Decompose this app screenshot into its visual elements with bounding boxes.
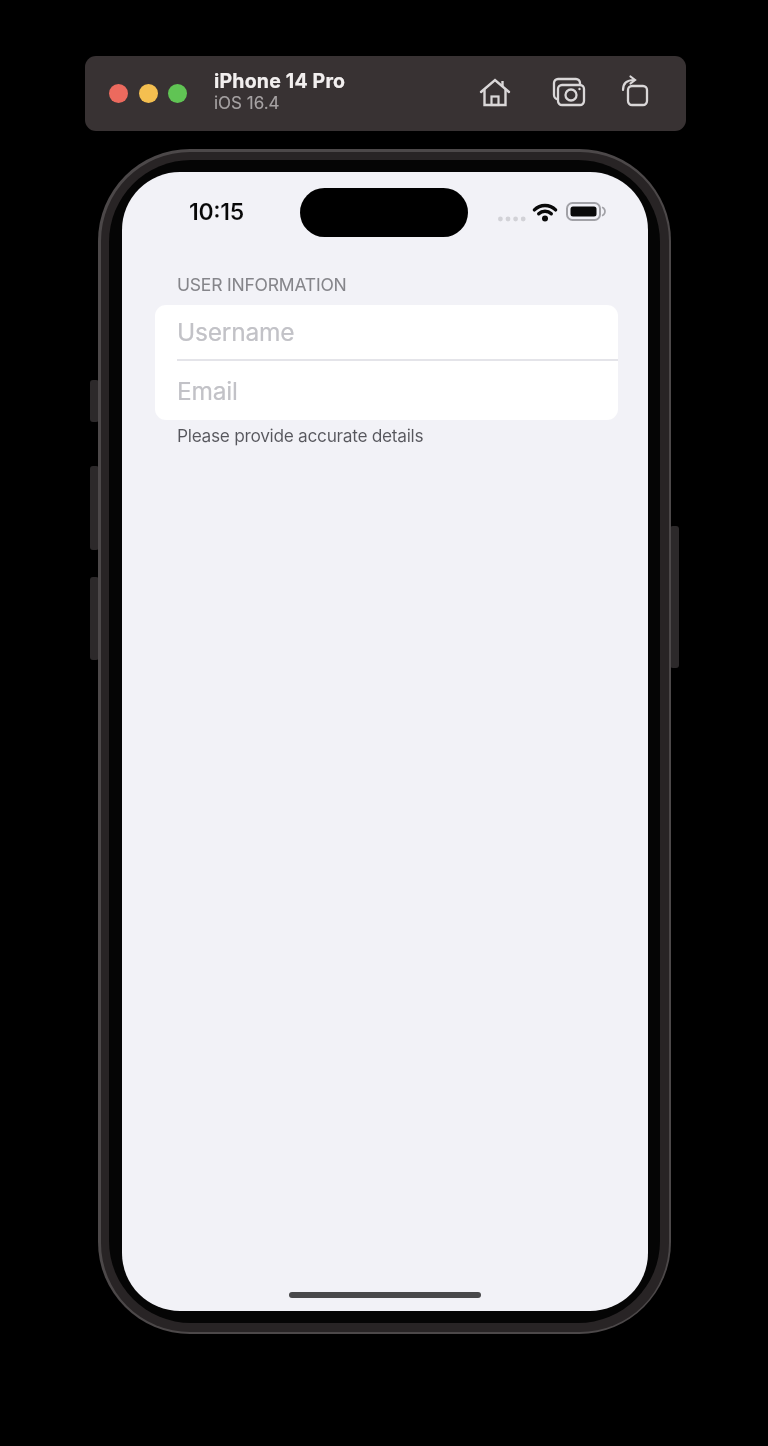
button[interactable]: [619, 76, 653, 110]
button[interactable]: [478, 76, 512, 110]
staticText: 10:15: [189, 198, 244, 226]
button[interactable]: [109, 84, 128, 103]
button[interactable]: Username: [155, 305, 618, 359]
button[interactable]: Email: [155, 361, 618, 420]
staticText: Please provide accurate details: [177, 425, 424, 446]
button[interactable]: [168, 84, 187, 103]
staticText: iPhone 14 Pro: [214, 69, 346, 93]
staticText: Email: [177, 376, 238, 406]
staticText: iOS 16.4: [214, 93, 280, 114]
button[interactable]: [139, 84, 158, 103]
button[interactable]: [550, 76, 586, 112]
staticText: USER INFORMATION: [177, 274, 347, 295]
staticText: Username: [177, 317, 295, 347]
